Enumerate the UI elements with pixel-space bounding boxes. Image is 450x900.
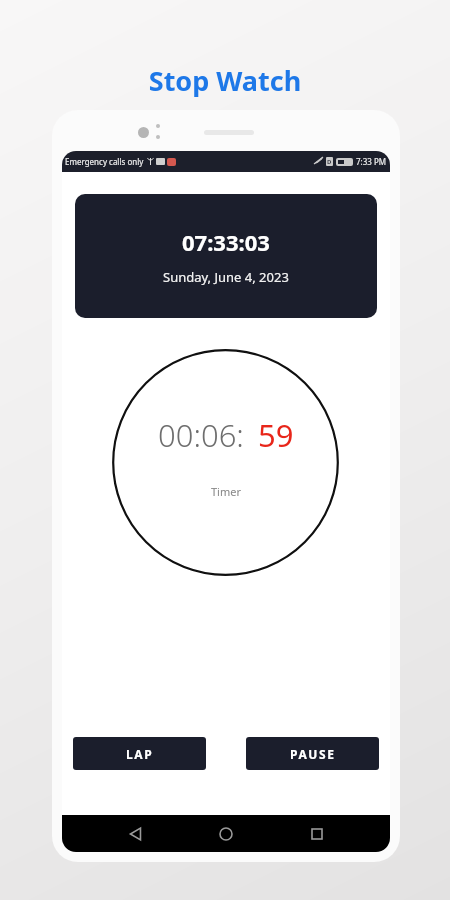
staticText: Timer <box>211 484 241 499</box>
staticText: LAP <box>126 746 154 762</box>
button[interactable]: LAP <box>73 737 206 770</box>
button[interactable]: 00:06: <box>112 349 339 576</box>
button[interactable]: 07:33:03 <box>75 194 377 318</box>
button[interactable]: Recent apps <box>300 817 334 851</box>
staticText: 07:33:03 <box>182 227 270 257</box>
staticText: D <box>327 158 332 166</box>
staticText: 59 <box>258 414 294 456</box>
staticText: Sunday, June 4, 2023 <box>163 268 289 286</box>
staticText: Stop Watch <box>0 62 450 99</box>
staticText: Emergency calls only <box>65 156 144 167</box>
button[interactable]: Home <box>209 817 243 851</box>
staticText: PAUSE <box>290 746 336 762</box>
button[interactable]: Back <box>119 817 153 851</box>
staticText: 7:33 PM <box>356 156 387 167</box>
staticText: 00:06: <box>158 414 244 456</box>
button[interactable]: PAUSE <box>246 737 379 770</box>
